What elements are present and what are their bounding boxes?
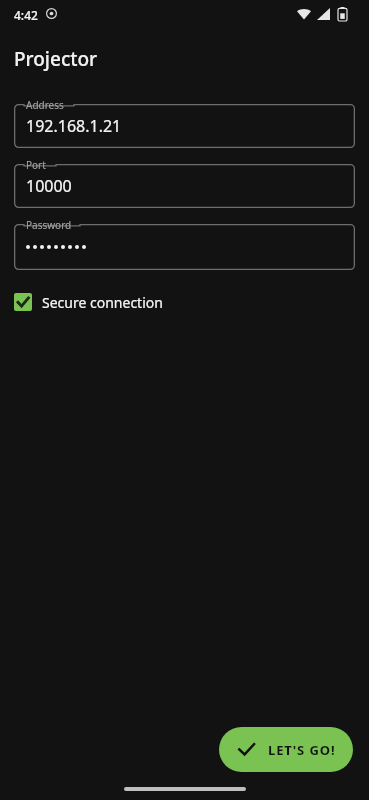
staticText: Password — [26, 218, 72, 232]
staticText: 10000 — [26, 175, 72, 197]
staticText: 4:42 — [14, 7, 38, 23]
other: Confirm — [237, 740, 256, 759]
staticText: Address — [26, 98, 64, 112]
button[interactable]: Port — [14, 164, 355, 208]
staticText: Projector — [14, 46, 98, 72]
staticText: Secure connection — [42, 293, 163, 312]
button[interactable]: Address — [14, 104, 355, 148]
other: Signal — [317, 8, 330, 20]
staticText: 192.168.1.21 — [26, 115, 122, 137]
staticText: Port — [26, 158, 46, 172]
staticText: LET'S GO! — [268, 741, 336, 759]
other: Battery — [338, 7, 347, 21]
button[interactable]: Secure connection — [14, 288, 194, 316]
other: Wi-Fi — [297, 8, 311, 20]
button[interactable]: Password — [14, 224, 355, 270]
button[interactable]: Confirm — [219, 727, 353, 772]
